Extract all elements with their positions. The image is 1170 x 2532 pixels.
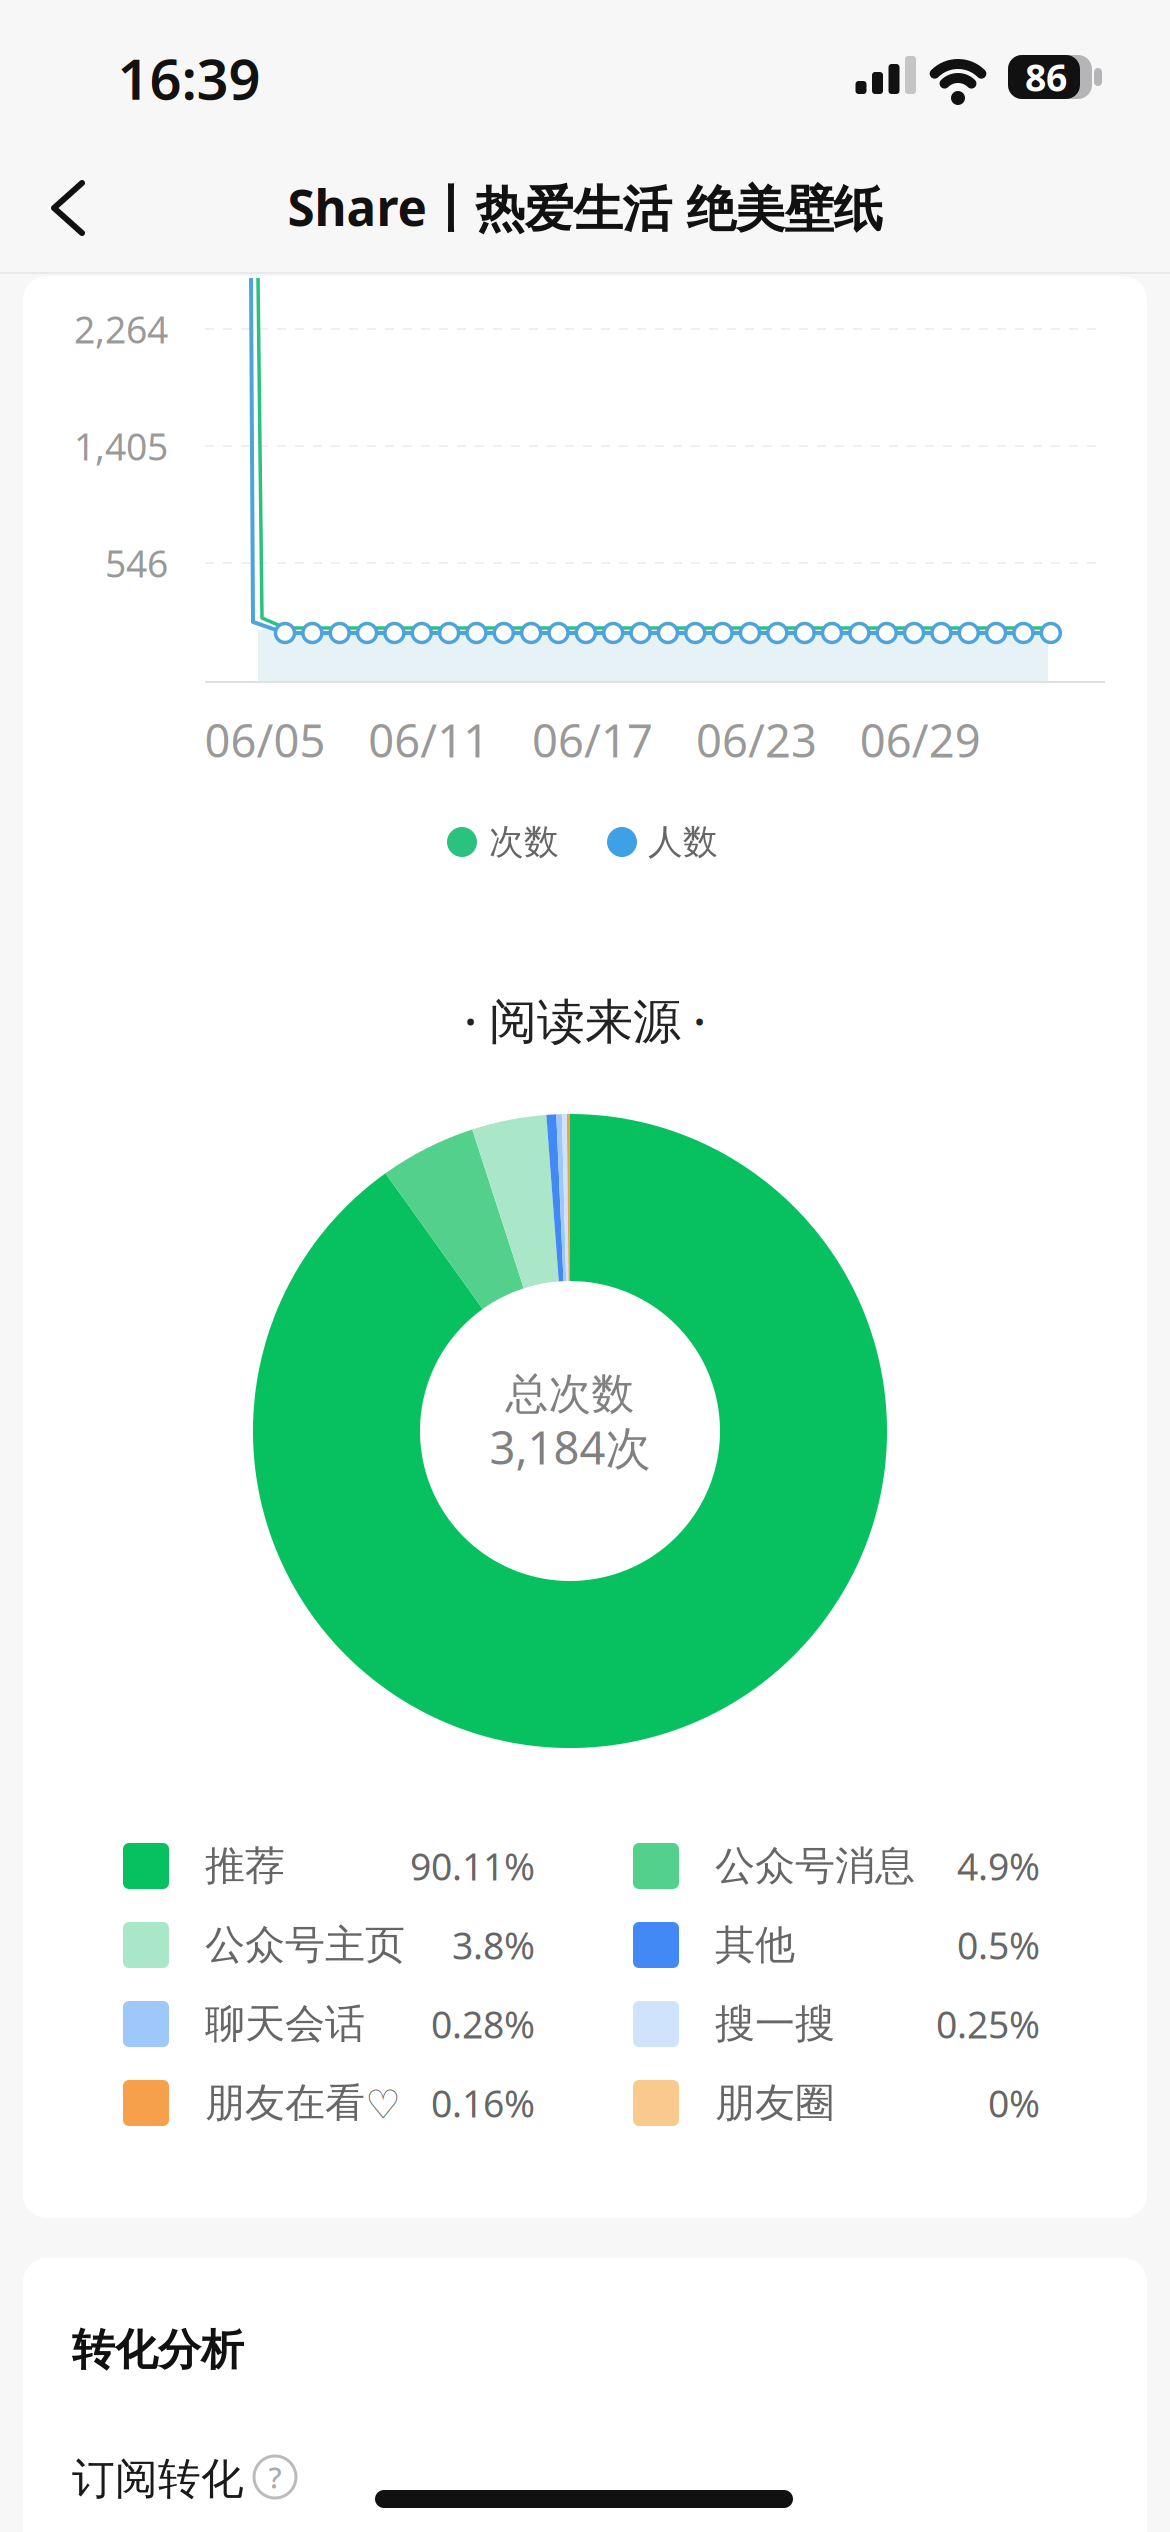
staticText: 3,184次 [489,1417,650,1477]
staticText: 人数 [648,821,718,863]
button[interactable]: 推荐 [0,0,1170,2532]
staticText: 2,264 [74,304,168,354]
button[interactable]: 公众号消息 [0,0,1170,2532]
button[interactable]: 聊天会话 [0,0,1170,2532]
staticText: 06/23 [696,710,817,770]
staticText: 转化分析 [72,2324,244,2376]
staticText: 06/05 [204,710,325,770]
button[interactable]: 搜一搜 [0,0,1170,2532]
staticText: Share丨热爱生活 绝美壁纸 [287,174,882,240]
button[interactable]: 朋友圈 [0,0,1170,2532]
staticText: 朋友在看♡ [205,2078,401,2127]
staticText: 4.9% [957,1841,1040,1891]
staticText: 0.16% [431,2078,535,2128]
staticText: 其他 [715,1920,795,1969]
staticText: 0.25% [936,1999,1040,2049]
staticText: · 阅读来源 · [464,988,706,1052]
staticText: 推荐 [205,1841,285,1890]
staticText: 搜一搜 [715,1999,835,2048]
button[interactable]: 朋友在看♡ [0,0,1170,2532]
staticText: 06/17 [532,710,653,770]
staticText: 聊天会话 [205,1999,365,2048]
staticText: 90.11% [410,1841,535,1891]
staticText: ? [268,2457,281,2496]
staticText: 次数 [489,821,559,863]
button[interactable]: 帮助 [254,2456,296,2498]
staticText: 朋友圈 [715,2078,835,2127]
staticText: 3.8% [452,1920,535,1970]
staticText: 06/29 [860,710,981,770]
button[interactable]: 其他 [0,0,1170,2532]
button[interactable]: Back [38,168,98,248]
staticText: 06/11 [368,710,489,770]
staticText: 86 [1025,52,1067,102]
staticText: 546 [105,538,168,588]
staticText: 订阅转化 [72,2453,244,2505]
staticText: 0.5% [957,1920,1040,1970]
staticText: 0.28% [431,1999,535,2049]
staticText: 1,405 [74,421,168,471]
staticText: 公众号主页 [205,1920,405,1969]
staticText: 公众号消息 [715,1841,915,1890]
staticText: 16:39 [117,41,260,115]
staticText: 总次数 [505,1368,634,1420]
staticText: 0% [988,2078,1040,2128]
button[interactable]: 公众号主页 [0,0,1170,2532]
